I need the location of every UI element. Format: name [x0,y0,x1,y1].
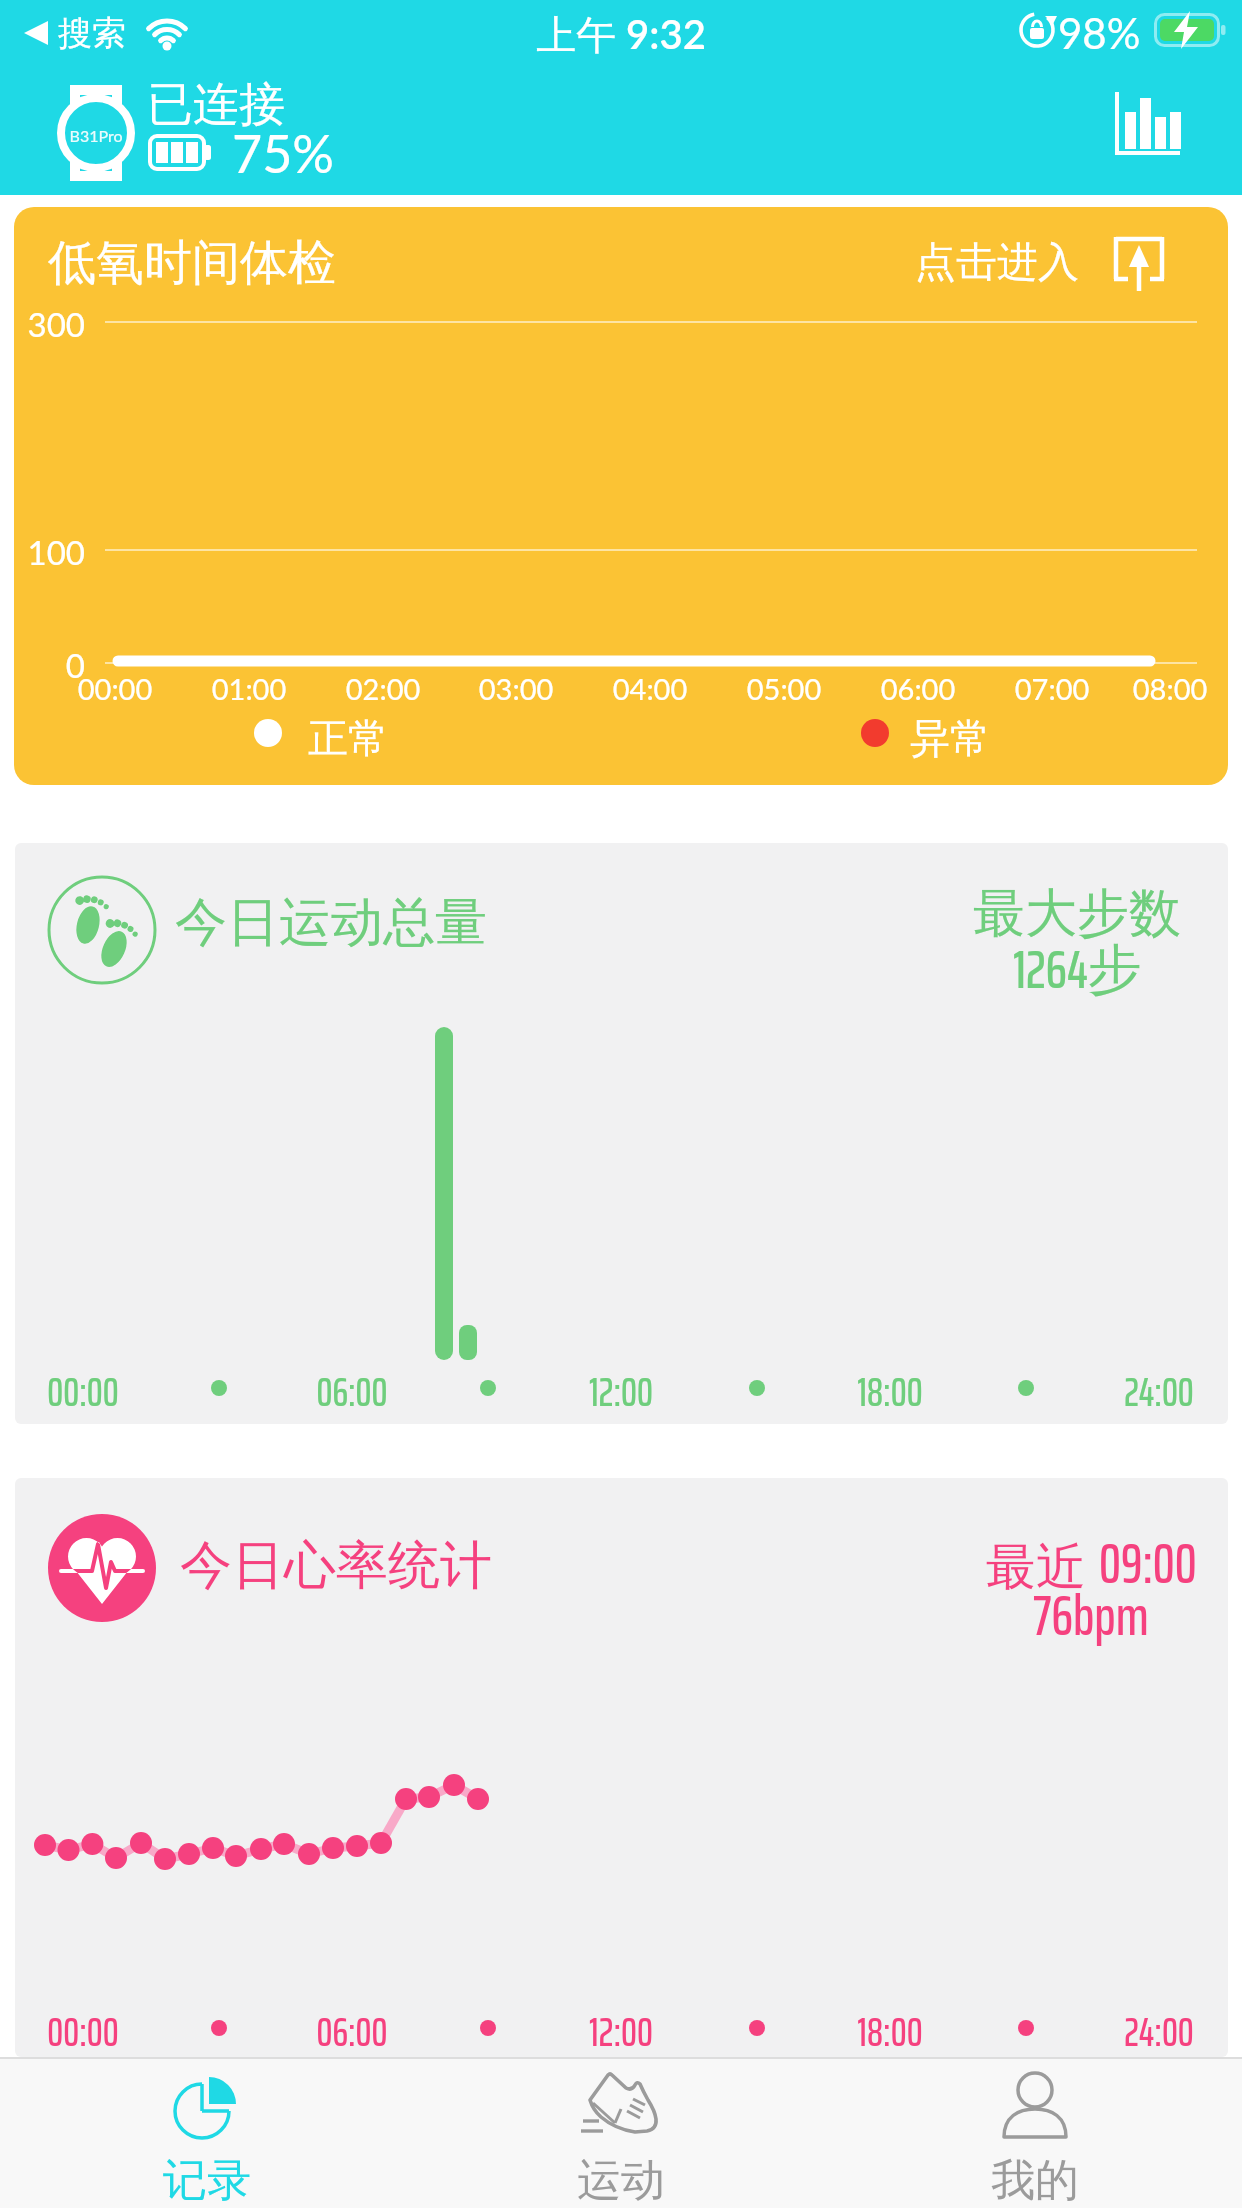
staticText: 搜索 [58,12,126,55]
staticText: 76bpm [1033,1573,1149,1660]
staticText: 已连接 [147,76,285,134]
staticText: 06:00 [863,671,973,706]
staticText: 18:00 [830,1361,950,1424]
staticText: 300 [23,304,85,344]
staticText: 08:00 [1115,671,1225,706]
staticText: 00:00 [23,1361,143,1424]
staticText: 06:00 [292,1361,412,1424]
button[interactable]: 今日心率统计 [15,1478,1228,2057]
staticText: 上午 9:32 [0,10,1242,61]
staticText: 07:00 [997,671,1107,706]
staticText: 低氧时间体检 [48,233,336,293]
staticText: 03:00 [461,671,571,706]
staticText: 我的 [991,2153,1079,2208]
staticText: 24:00 [1099,2001,1219,2057]
staticText: 00:00 [60,671,170,706]
staticText: 今日运动总量 [175,890,487,956]
staticText: 75% [232,122,334,184]
button[interactable]: 我的 [828,2057,1242,2208]
staticText: 记录 [163,2153,251,2208]
staticText: 0 [23,645,85,685]
staticText: 04:00 [595,671,705,706]
staticText: 01:00 [194,671,304,706]
staticText: 24:00 [1099,1361,1219,1424]
staticText: 00:00 [23,2001,143,2057]
button[interactable]: 今日运动总量 [15,843,1228,1424]
staticText: 09:00 [1099,1521,1197,1608]
staticText: 运动 [577,2153,665,2208]
staticText: 异常 [910,713,990,763]
staticText: 05:00 [729,671,839,706]
staticText: 最大步数 [973,881,1181,947]
button[interactable]: 低氧时间体检 [14,207,1228,785]
staticText: 100 [23,532,85,572]
staticText: 点击进入 [915,237,1079,289]
button[interactable]: 记录 [0,2057,414,2208]
staticText: 今日心率统计 [180,1533,492,1599]
staticText: 18:00 [830,2001,950,2057]
staticText: 12:00 [561,2001,681,2057]
staticText: 正常 [308,713,388,763]
staticText: 98% [1058,8,1141,58]
button[interactable]: 运动 [414,2057,828,2208]
staticText: 02:00 [328,671,438,706]
staticText: 1264步 [1013,927,1142,1012]
button[interactable] [1100,80,1196,170]
staticText: 最近 [986,1531,1099,1599]
staticText: 12:00 [561,1361,681,1424]
staticText: 06:00 [292,2001,412,2057]
staticText: B31Pro [62,126,130,145]
